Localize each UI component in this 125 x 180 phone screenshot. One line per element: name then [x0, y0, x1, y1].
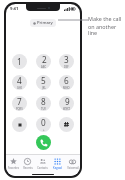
staticText: TUV: [41, 107, 46, 111]
button[interactable]: 1: [12, 54, 27, 69]
button[interactable]: 9: [59, 96, 74, 111]
staticText: 8: [41, 96, 46, 107]
staticText: 4: [17, 75, 22, 86]
button[interactable]: [12, 117, 27, 132]
staticText: 9: [65, 96, 70, 107]
button[interactable]: Call: [36, 135, 51, 150]
staticText: 5: [41, 75, 46, 86]
staticText: ABC: [41, 65, 47, 69]
staticText: Contacts: [37, 166, 48, 169]
staticText: Voicemail: [67, 166, 79, 169]
staticText: PQRS: [16, 107, 23, 111]
staticText: 1: [17, 56, 22, 67]
button[interactable]: 4: [12, 75, 27, 90]
staticText: DEF: [64, 65, 69, 69]
staticText: Favorites: [8, 166, 19, 169]
button[interactable]: 0: [36, 117, 51, 132]
button[interactable]: 8: [36, 96, 51, 111]
staticText: +: [43, 128, 45, 132]
button[interactable]: Contacts: [35, 155, 50, 172]
button[interactable]: [59, 117, 74, 132]
staticText: 0: [41, 117, 46, 128]
button[interactable]: 2: [36, 54, 51, 69]
staticText: JKL: [42, 86, 46, 90]
button[interactable]: Voicemail: [65, 155, 80, 172]
button[interactable]: Recents: [20, 155, 35, 172]
button[interactable]: 3: [59, 54, 74, 69]
staticText: 2: [42, 54, 47, 65]
staticText: on another line: [88, 23, 125, 36]
staticText: WXYZ: [63, 107, 71, 111]
staticText: 6: [64, 75, 69, 86]
staticText: 3: [64, 54, 69, 65]
staticText: Keypad: [53, 166, 62, 169]
button[interactable]: Favorites: [6, 155, 20, 172]
button[interactable]: Keypad: [50, 155, 65, 172]
button[interactable]: Primary: [30, 19, 56, 27]
staticText: Primary: [37, 20, 53, 26]
button[interactable]: 6: [59, 75, 74, 90]
button[interactable]: 5: [36, 75, 51, 90]
staticText: Make the call: [88, 15, 122, 22]
staticText: 7: [17, 96, 22, 107]
staticText: MNO: [63, 86, 70, 90]
staticText: GHI: [17, 86, 22, 90]
staticText: Recents: [23, 166, 33, 169]
staticText: 9:41: [10, 6, 19, 12]
button[interactable]: 7: [12, 96, 27, 111]
